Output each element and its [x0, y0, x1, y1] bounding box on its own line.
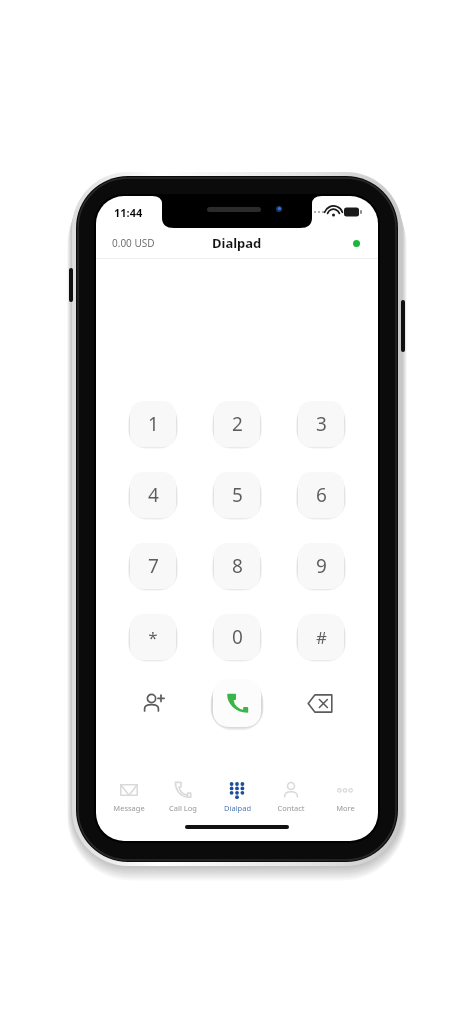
other: Online status [353, 240, 360, 247]
button[interactable]: Call [213, 679, 261, 727]
button[interactable]: 8 [214, 543, 260, 589]
staticText: 3 [316, 411, 327, 437]
staticText: 4 [148, 482, 159, 508]
staticText: 0 [232, 624, 243, 650]
button[interactable]: Backspace [295, 678, 345, 728]
staticText: Call Log [169, 803, 197, 813]
button[interactable]: 4 [130, 472, 176, 518]
staticText: 5 [232, 482, 243, 508]
button[interactable]: 1 [130, 401, 176, 447]
staticText: Contact [277, 803, 305, 813]
button[interactable]: Contact [264, 773, 318, 819]
staticText: 2 [232, 411, 243, 437]
staticText: Dialpad [224, 803, 251, 813]
button[interactable]: Message [102, 773, 156, 819]
staticText: 6 [316, 482, 327, 508]
staticText: 0.00 USD [112, 236, 155, 250]
staticText: 8 [232, 553, 243, 579]
button[interactable]: Call Log [156, 773, 210, 819]
button[interactable]: Dialpad [210, 773, 264, 819]
button[interactable]: # [298, 614, 344, 660]
staticText: Message [113, 803, 145, 813]
button[interactable]: More [318, 773, 372, 819]
button[interactable]: 3 [298, 401, 344, 447]
button[interactable]: 6 [298, 472, 344, 518]
button[interactable]: * [130, 614, 176, 660]
staticText: 1 [148, 411, 159, 437]
staticText: More [336, 803, 355, 813]
staticText: 11:44 [114, 205, 143, 220]
button[interactable]: 7 [130, 543, 176, 589]
staticText: # [316, 626, 327, 649]
button[interactable]: 5 [214, 472, 260, 518]
staticText: 7 [148, 553, 159, 579]
staticText: * [148, 626, 158, 649]
staticText: Dialpad [212, 234, 262, 252]
staticText: 9 [316, 553, 327, 579]
button[interactable]: 2 [214, 401, 260, 447]
button[interactable]: Add contact [129, 678, 179, 728]
button[interactable]: 9 [298, 543, 344, 589]
button[interactable]: 0 [214, 614, 260, 660]
